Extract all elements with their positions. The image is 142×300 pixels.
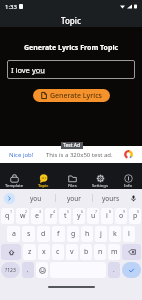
staticText: s bbox=[27, 229, 31, 239]
button[interactable]: Backspace bbox=[122, 244, 141, 260]
staticText: i bbox=[106, 211, 108, 221]
button[interactable]: Ad choices bbox=[124, 150, 133, 159]
staticText: g bbox=[71, 229, 76, 239]
staticText: 5 bbox=[67, 209, 70, 214]
button[interactable]: your bbox=[55, 189, 92, 207]
button[interactable]: Files bbox=[58, 163, 86, 189]
button[interactable]: More suggestions bbox=[4, 193, 15, 204]
staticText: 1:33 bbox=[5, 3, 17, 11]
button[interactable]: o bbox=[115, 208, 127, 224]
button[interactable]: Shift bbox=[1, 244, 21, 260]
staticText: u bbox=[91, 211, 96, 221]
button[interactable]: k bbox=[109, 226, 121, 242]
staticText: x bbox=[42, 247, 46, 257]
button[interactable]: s bbox=[22, 226, 35, 242]
button[interactable]: f bbox=[52, 226, 65, 242]
button[interactable]: Info bbox=[114, 163, 142, 189]
staticText: Files bbox=[68, 183, 77, 189]
button[interactable]: y bbox=[73, 208, 85, 224]
button[interactable]: n bbox=[94, 244, 106, 260]
staticText: v bbox=[70, 247, 74, 257]
staticText: Settings bbox=[92, 183, 108, 189]
button[interactable]: Settings bbox=[86, 163, 114, 189]
button[interactable]: p bbox=[129, 208, 141, 224]
staticText: q bbox=[5, 211, 10, 221]
button[interactable]: l bbox=[123, 226, 135, 242]
button[interactable]: b bbox=[80, 244, 92, 260]
staticText: c bbox=[56, 247, 60, 257]
other: Emoji bbox=[39, 267, 46, 274]
staticText: a bbox=[12, 229, 16, 239]
staticText: Test Ad bbox=[63, 142, 81, 149]
staticText: Template bbox=[5, 183, 24, 189]
staticText: w bbox=[20, 211, 26, 221]
button[interactable]: d bbox=[37, 226, 50, 242]
button[interactable]: Emoji bbox=[36, 262, 48, 278]
staticText: This is a 320x50 test ad. bbox=[46, 151, 113, 159]
staticText: y bbox=[77, 211, 81, 221]
staticText: h bbox=[85, 229, 90, 239]
other: Shift bbox=[8, 249, 15, 256]
staticText: you bbox=[30, 194, 42, 203]
button[interactable]: you bbox=[17, 189, 55, 207]
button[interactable]: , bbox=[22, 262, 34, 278]
button[interactable]: g bbox=[67, 226, 79, 242]
staticText: k bbox=[113, 229, 117, 239]
staticText: yours bbox=[102, 194, 120, 203]
staticText: ?123 bbox=[5, 267, 16, 274]
staticText: p bbox=[133, 211, 138, 221]
staticText: j bbox=[100, 229, 102, 239]
staticText: 2 bbox=[25, 209, 28, 214]
button[interactable]: q bbox=[1, 208, 14, 224]
button[interactable]: i bbox=[101, 208, 113, 224]
staticText: I love bbox=[11, 65, 32, 75]
button[interactable]: j bbox=[95, 226, 107, 242]
staticText: n bbox=[98, 247, 103, 257]
button[interactable]: h bbox=[81, 226, 93, 242]
button[interactable]: Nice job! bbox=[0, 146, 142, 163]
button[interactable]: yours bbox=[92, 189, 129, 207]
staticText: Generate Lyrics From Topic bbox=[0, 43, 142, 53]
staticText: 1 bbox=[10, 209, 13, 214]
button[interactable]: Voice input bbox=[129, 194, 138, 203]
staticText: , bbox=[27, 266, 29, 274]
staticText: e bbox=[35, 211, 39, 221]
button[interactable]: a bbox=[7, 226, 20, 242]
staticText: m bbox=[111, 247, 118, 257]
button[interactable]: Enter bbox=[122, 262, 141, 278]
button[interactable]: u bbox=[87, 208, 99, 224]
button[interactable]: ?123 bbox=[1, 262, 20, 278]
button[interactable]: w bbox=[16, 208, 29, 224]
button[interactable]: Topic bbox=[29, 163, 58, 189]
staticText: 6 bbox=[81, 209, 84, 214]
staticText: you bbox=[32, 65, 45, 75]
staticText: l bbox=[128, 229, 130, 239]
button[interactable]: m bbox=[108, 244, 120, 260]
button[interactable]: Template bbox=[0, 163, 29, 189]
button[interactable]: x bbox=[38, 244, 50, 260]
button[interactable]: v bbox=[66, 244, 78, 260]
staticText: Nice job! bbox=[9, 151, 34, 159]
staticText: Topic bbox=[61, 15, 81, 26]
staticText: 9 bbox=[123, 209, 126, 214]
staticText: Info bbox=[124, 183, 132, 189]
staticText: o bbox=[119, 211, 124, 221]
staticText: Generate Lyrics bbox=[50, 91, 102, 101]
staticText: Topic bbox=[38, 183, 49, 189]
button[interactable]: t bbox=[59, 208, 71, 224]
staticText: 7 bbox=[95, 209, 98, 214]
staticText: 4 bbox=[53, 209, 56, 214]
button[interactable]: z bbox=[23, 244, 36, 260]
button[interactable]: Generate Lyrics bbox=[33, 89, 110, 102]
button[interactable]: c bbox=[52, 244, 64, 260]
staticText: your bbox=[67, 194, 81, 203]
button[interactable]: I love bbox=[7, 60, 135, 79]
button[interactable]: r bbox=[45, 208, 57, 224]
button[interactable]: . bbox=[108, 262, 120, 278]
staticText: 8 bbox=[109, 209, 112, 214]
staticText: r bbox=[50, 211, 53, 221]
staticText: . bbox=[113, 266, 115, 274]
staticText: t bbox=[64, 211, 67, 221]
button[interactable]: e bbox=[31, 208, 43, 224]
